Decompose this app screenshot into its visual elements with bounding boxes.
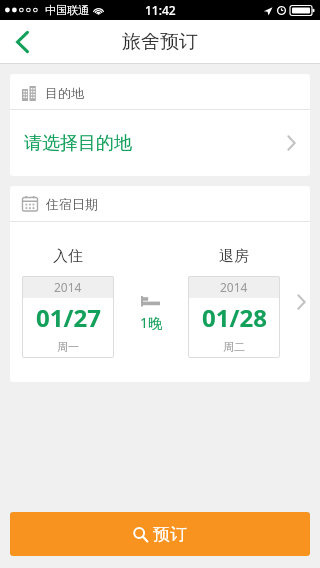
staticText: 住宿日期	[46, 196, 98, 212]
staticText: 1晚	[140, 313, 163, 332]
staticText: 退房	[219, 247, 249, 266]
button[interactable]: 入住	[10, 222, 310, 382]
staticText: 2014	[220, 279, 248, 295]
staticText: 周二	[223, 340, 245, 354]
staticText: 旅舍预订	[122, 30, 198, 54]
staticText: 01/28	[202, 301, 267, 334]
staticText: 入住	[53, 247, 83, 266]
staticText: 2014	[54, 279, 82, 295]
staticText: 中国联通	[45, 3, 89, 17]
button[interactable]: 预订	[10, 512, 310, 556]
staticText: 01/27	[36, 301, 101, 334]
staticText: 11:42	[145, 2, 176, 18]
staticText: 请选择目的地	[24, 132, 287, 155]
staticText: 预订	[153, 524, 187, 545]
staticText: 目的地	[45, 85, 84, 101]
button[interactable]: Back	[0, 20, 44, 64]
staticText: 周一	[57, 340, 79, 354]
button[interactable]: 请选择目的地	[10, 110, 310, 176]
